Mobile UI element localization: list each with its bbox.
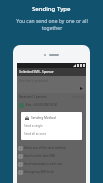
- staticText: Sending Method: [31, 116, 56, 120]
- button[interactable]: Send a single: [24, 123, 82, 129]
- button[interactable]: Send all at once: [24, 131, 82, 137]
- staticText: Send it at the best SMS: [24, 154, 56, 158]
- staticText: You can send one by one or all together: [16, 18, 88, 31]
- button[interactable]: Select one of the send method: [17, 144, 86, 152]
- button[interactable]: Unlimited SMS - Sponsor: [17, 68, 86, 76]
- staticText: Send all at once: [24, 132, 47, 136]
- button[interactable]: Send separately to each one: [17, 160, 86, 168]
- button[interactable]: Kris +90 555 000 00 00: [19, 100, 86, 110]
- staticText: Sending Type: [32, 5, 71, 13]
- other: Play: [80, 87, 83, 90]
- staticText: Send a single: [24, 124, 43, 128]
- staticText: Unlimited SMS - Sponsor: [19, 70, 54, 74]
- staticText: Send group SMS to all: [24, 170, 54, 174]
- button[interactable]: Send group SMS to all: [17, 168, 86, 176]
- staticText: Receivers (1 person): [19, 95, 47, 99]
- staticText: Send separately to each one: [24, 162, 63, 166]
- staticText: Kris +90 555 000 00 00: [26, 103, 58, 107]
- button[interactable]: Send it at the best SMS: [17, 152, 86, 160]
- staticText: Select one of the send method: [24, 146, 66, 150]
- staticText: Your text is protected: [19, 79, 48, 83]
